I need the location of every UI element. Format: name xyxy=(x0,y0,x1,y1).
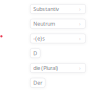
button[interactable]: Der xyxy=(30,78,45,87)
button[interactable]: D xyxy=(30,48,40,58)
staticText: › xyxy=(79,35,81,42)
staticText: D xyxy=(33,50,37,57)
staticText: › xyxy=(79,20,81,27)
button[interactable]: -(e)s xyxy=(30,34,85,43)
button[interactable]: die (Plural) xyxy=(30,63,85,73)
button[interactable]: Neutrum xyxy=(30,19,85,28)
staticText: Substantiv xyxy=(33,5,59,12)
staticText: › xyxy=(79,64,81,71)
staticText: die (Plural) xyxy=(33,64,58,71)
staticText: › xyxy=(79,5,81,12)
button[interactable]: Substantiv xyxy=(30,4,85,14)
staticText: Der xyxy=(33,79,42,86)
staticText: Neutrum xyxy=(33,20,55,27)
staticText: -(e)s xyxy=(33,35,45,42)
